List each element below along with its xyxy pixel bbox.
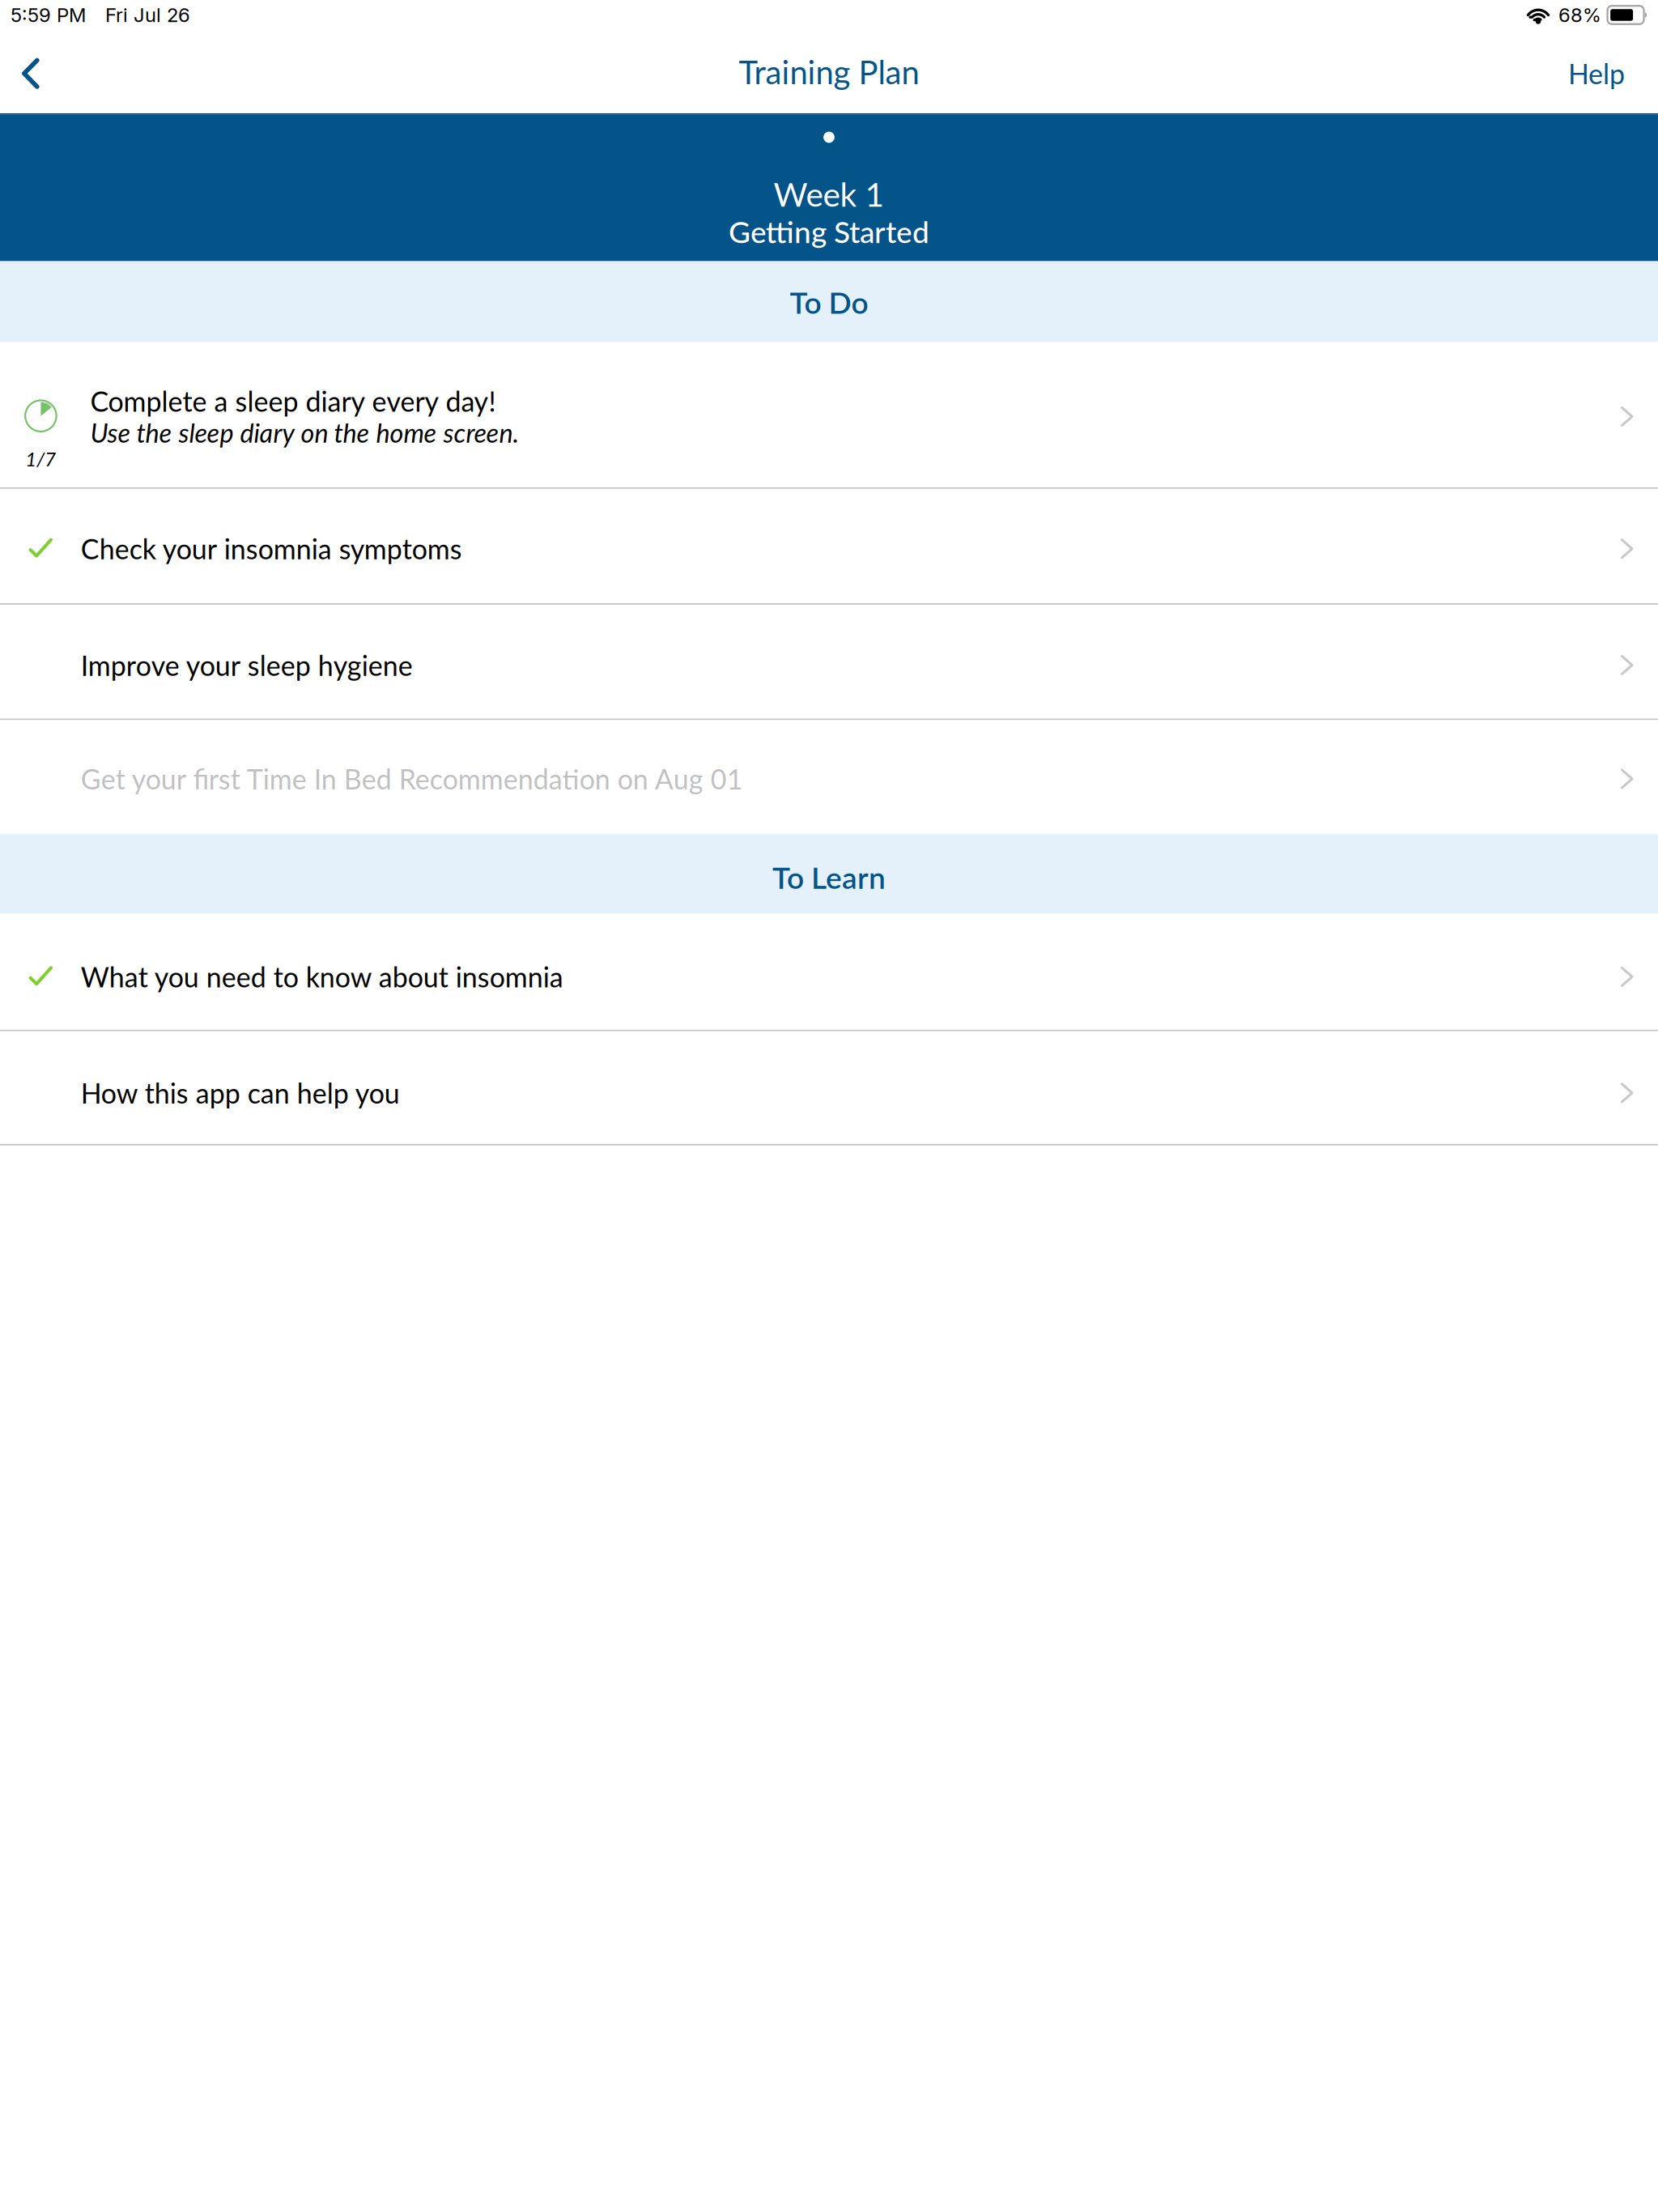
staticText: Complete a sleep diary every day!: [90, 385, 496, 418]
staticText: Get your first Time In Bed Recommendatio…: [81, 762, 743, 795]
button[interactable]: 1/7: [0, 342, 1658, 487]
staticText: What you need to know about insomnia: [81, 960, 563, 993]
staticText: Fri Jul 26: [105, 3, 190, 27]
staticText: To Learn: [772, 859, 886, 895]
button[interactable]: Help: [1568, 30, 1658, 113]
staticText: Use the sleep diary on the home screen.: [90, 417, 519, 448]
button[interactable]: Get your first Time In Bed Recommendatio…: [0, 720, 1658, 834]
staticText: Improve your sleep hygiene: [81, 649, 413, 682]
button[interactable]: What you need to know about insomnia: [0, 914, 1658, 1030]
button[interactable]: How this app can help you: [0, 1031, 1658, 1144]
staticText: Check your insomnia symptoms: [81, 532, 462, 565]
button[interactable]: Check your insomnia symptoms: [0, 489, 1658, 603]
staticText: Help: [1568, 57, 1625, 90]
staticText: To Do: [790, 284, 868, 320]
button[interactable]: Back: [0, 30, 78, 113]
staticText: Getting Started: [729, 214, 929, 250]
staticText: Training Plan: [739, 52, 919, 91]
staticText: How this app can help you: [81, 1076, 400, 1109]
button[interactable]: Improve your sleep hygiene: [0, 605, 1658, 719]
staticText: Week 1: [774, 174, 884, 214]
staticText: 5:59 PM: [11, 3, 86, 27]
staticText: 1/7: [25, 447, 56, 470]
staticText: 68%: [1558, 3, 1601, 27]
